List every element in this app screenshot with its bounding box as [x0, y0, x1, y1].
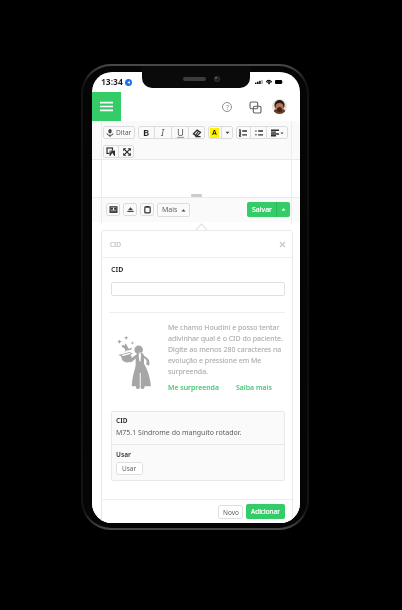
staticText: Ditar [116, 128, 132, 137]
button[interactable]: Action [140, 203, 154, 216]
staticText: ? [226, 103, 229, 112]
button[interactable]: More save options [277, 202, 290, 217]
button[interactable]: Fullscreen [119, 145, 134, 158]
button[interactable]: Numbered list [236, 126, 250, 139]
button[interactable]: Mais [157, 203, 190, 217]
button[interactable]: Clear formatting [189, 126, 205, 139]
button[interactable]: Align [267, 126, 288, 139]
button[interactable]: B [138, 126, 154, 139]
staticText: Usar [116, 450, 131, 459]
staticText: B [143, 126, 150, 139]
staticText: A [212, 128, 217, 138]
button[interactable]: Me surpreenda [168, 383, 219, 393]
staticText: U [177, 126, 184, 139]
staticText: CID [110, 240, 122, 249]
button[interactable]: Salvar [247, 202, 276, 217]
button[interactable]: Highlight colour [222, 126, 233, 139]
staticText: Me surpreenda [168, 383, 219, 393]
button[interactable] [111, 282, 285, 296]
button[interactable]: Insert image [103, 145, 118, 158]
staticText: 13:34 [101, 76, 123, 88]
button[interactable]: Adicionar [246, 504, 285, 519]
button[interactable]: Menu [92, 92, 121, 121]
button[interactable]: Ditar [103, 126, 135, 139]
staticText: Me chamo Houdini e posso tentar adivinha… [168, 323, 285, 376]
button[interactable]: Saiba mais [236, 383, 272, 393]
button[interactable]: Help [218, 98, 236, 116]
button[interactable]: Usar [116, 462, 143, 475]
button[interactable]: Account [272, 99, 287, 114]
button[interactable]: Novo [218, 505, 243, 519]
button[interactable]: U [172, 126, 188, 139]
staticText: M75.1 Síndrome do manguito rotador. [116, 428, 242, 438]
staticText: Adicionar [251, 507, 280, 516]
button[interactable]: Close [276, 238, 288, 250]
button[interactable]: Action [106, 203, 120, 216]
button[interactable]: Chat [246, 98, 264, 116]
staticText: CID [111, 265, 124, 275]
staticText: I [161, 126, 165, 139]
staticText: Saiba mais [236, 383, 272, 393]
staticText: Salvar [252, 205, 272, 215]
button[interactable]: Highlight [208, 126, 221, 139]
staticText: Mais [162, 205, 178, 215]
staticText: Novo [223, 508, 239, 517]
button[interactable]: I [155, 126, 171, 139]
staticText: CID [116, 416, 128, 425]
staticText: Usar [122, 464, 137, 473]
button[interactable]: Action [123, 203, 137, 216]
button[interactable]: Bulleted list [251, 126, 266, 139]
